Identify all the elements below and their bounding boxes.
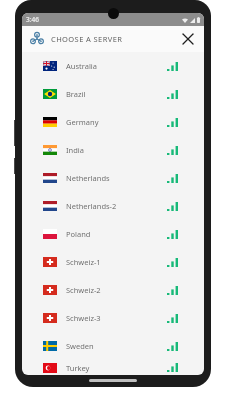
button[interactable]: Netherlands-2 — [22, 192, 204, 220]
button[interactable]: Brazil — [22, 80, 204, 108]
button[interactable]: Australia — [22, 52, 204, 80]
staticText: 3:46 — [26, 15, 39, 24]
staticText: India — [66, 145, 84, 155]
staticText: Schweiz-2 — [66, 285, 101, 295]
staticText: Netherlands — [66, 173, 110, 183]
button[interactable]: Schweiz-2 — [22, 276, 204, 304]
staticText: Germany — [66, 117, 99, 127]
button[interactable]: Netherlands — [22, 164, 204, 192]
staticText: Schweiz-1 — [66, 257, 101, 267]
staticText: Schweiz-3 — [66, 313, 101, 323]
staticText: Australia — [66, 61, 97, 71]
button[interactable]: Turkey — [22, 360, 204, 375]
staticText: Brazil — [66, 89, 86, 99]
button[interactable]: Close — [176, 27, 200, 51]
staticText: Poland — [66, 229, 91, 239]
staticText: CHOOSE A SERVER — [51, 34, 123, 44]
button[interactable]: Poland — [22, 220, 204, 248]
button[interactable]: Schweiz-3 — [22, 304, 204, 332]
button[interactable]: India — [22, 136, 204, 164]
button[interactable]: Schweiz-1 — [22, 248, 204, 276]
staticText: Sweden — [66, 341, 94, 351]
staticText: Turkey — [66, 363, 90, 373]
button[interactable]: Germany — [22, 108, 204, 136]
staticText: Netherlands-2 — [66, 201, 117, 211]
button[interactable]: Sweden — [22, 332, 204, 360]
other: App logo — [30, 32, 44, 46]
